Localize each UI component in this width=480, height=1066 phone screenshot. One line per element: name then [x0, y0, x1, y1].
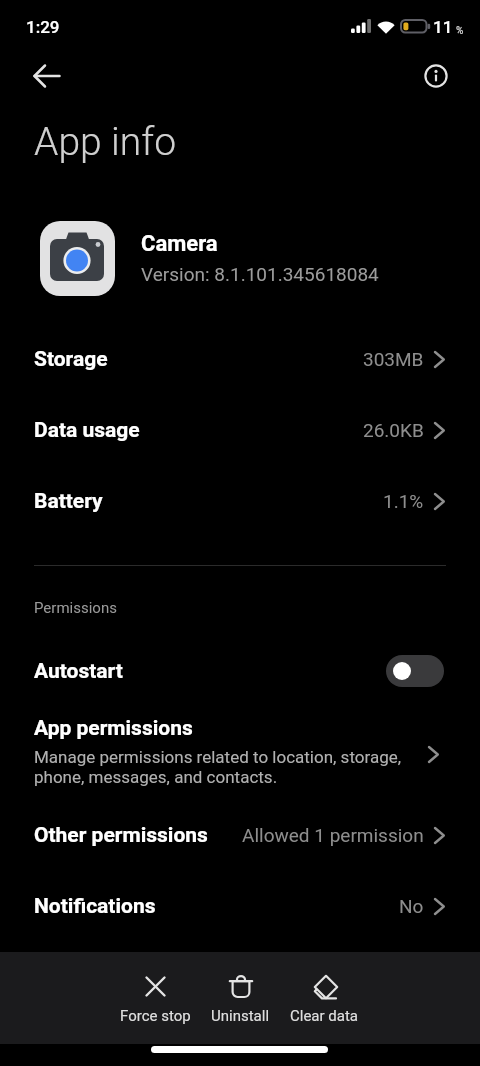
button[interactable]: Data usage [0, 394, 480, 466]
staticText: Permissions [34, 599, 117, 617]
staticText: Data usage [34, 418, 140, 443]
button[interactable]: Storage [0, 323, 480, 395]
staticText: No [399, 895, 424, 917]
button[interactable]: App permissions [0, 706, 480, 802]
staticText: 11 [433, 17, 453, 37]
button[interactable] [421, 61, 451, 91]
button[interactable]: Autostart [0, 635, 480, 707]
staticText: Other permissions [34, 823, 208, 848]
button[interactable]: Battery [0, 465, 480, 537]
button[interactable]: Notifications [0, 870, 480, 942]
button[interactable]: Clear data [286, 952, 362, 1044]
staticText: % [456, 25, 464, 37]
staticText: Manage permissions related to location, … [34, 747, 402, 787]
staticText: 1:29 [26, 17, 60, 37]
staticText: 303MB [363, 348, 424, 370]
staticText: Uninstall [211, 1007, 270, 1025]
staticText: App info [34, 119, 177, 165]
staticText: 1.1% [383, 490, 424, 512]
staticText: 26.0KB [363, 419, 424, 441]
button[interactable]: Uninstall [203, 952, 277, 1044]
staticText: Notifications [34, 894, 156, 919]
button[interactable]: Force stop [118, 952, 192, 1044]
staticText: App permissions [34, 716, 193, 741]
staticText: Storage [34, 347, 108, 372]
button[interactable]: Other permissions [0, 799, 480, 871]
staticText: Force stop [120, 1007, 191, 1025]
staticText: Version: 8.1.101.345618084 [141, 263, 379, 285]
staticText: Battery [34, 489, 103, 514]
button[interactable] [28, 57, 66, 95]
staticText: Clear data [290, 1007, 359, 1025]
staticText: Autostart [34, 659, 123, 684]
staticText: Allowed 1 permission [242, 824, 424, 846]
staticText: Camera [141, 231, 218, 257]
